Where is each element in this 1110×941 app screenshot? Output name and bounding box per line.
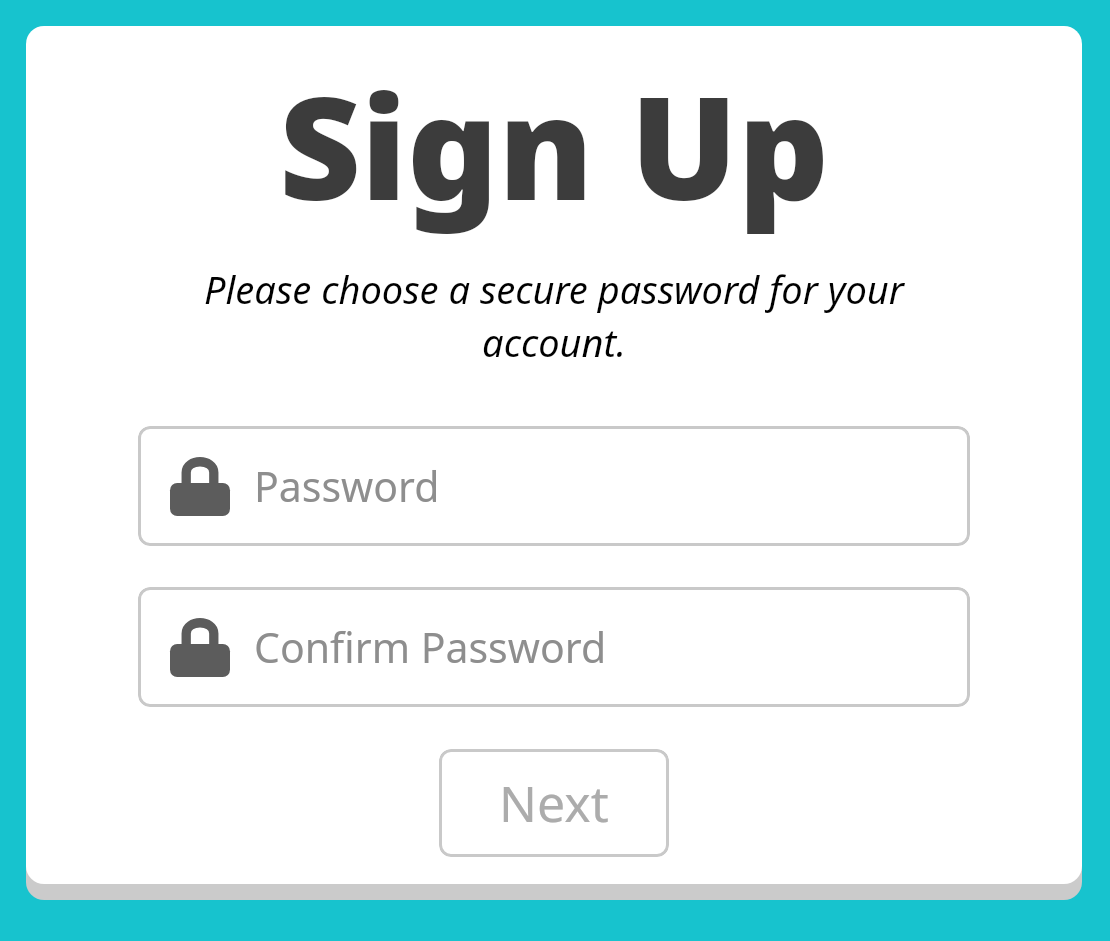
staticText: Please choose a secure password for your… [156,263,952,369]
other: Lock [170,456,230,516]
button[interactable]: Next [439,749,669,857]
staticText: Next [499,769,609,837]
button[interactable]: Lock [138,587,970,707]
other: Lock [170,617,230,677]
staticText: Confirm Password [254,619,607,675]
staticText: Sign Up [26,48,1082,241]
button[interactable]: Lock [138,426,970,546]
staticText: Password [254,458,440,514]
